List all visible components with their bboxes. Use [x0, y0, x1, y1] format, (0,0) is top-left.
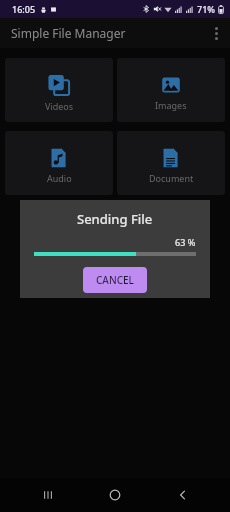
- staticText: Audio: [47, 172, 72, 184]
- staticText: CANCEL: [96, 273, 134, 287]
- button[interactable]: Home: [95, 478, 135, 512]
- staticText: 71%: [197, 3, 215, 15]
- staticText: 16:05: [12, 3, 36, 15]
- staticText: Images: [155, 99, 187, 111]
- button[interactable]: CANCEL: [83, 267, 147, 293]
- button[interactable]: Document: [117, 131, 225, 195]
- button[interactable]: Recent apps: [28, 478, 68, 512]
- button[interactable]: Audio: [5, 131, 113, 195]
- button[interactable]: Images: [117, 58, 225, 122]
- button[interactable]: Videos: [5, 58, 113, 122]
- button[interactable]: Back: [163, 478, 203, 512]
- staticText: Simple File Manager: [11, 25, 126, 41]
- staticText: Document: [149, 172, 194, 184]
- staticText: 63 %: [175, 236, 196, 248]
- staticText: Videos: [45, 100, 74, 112]
- staticText: Sending File: [77, 210, 153, 228]
- button[interactable]: More options: [202, 19, 230, 47]
